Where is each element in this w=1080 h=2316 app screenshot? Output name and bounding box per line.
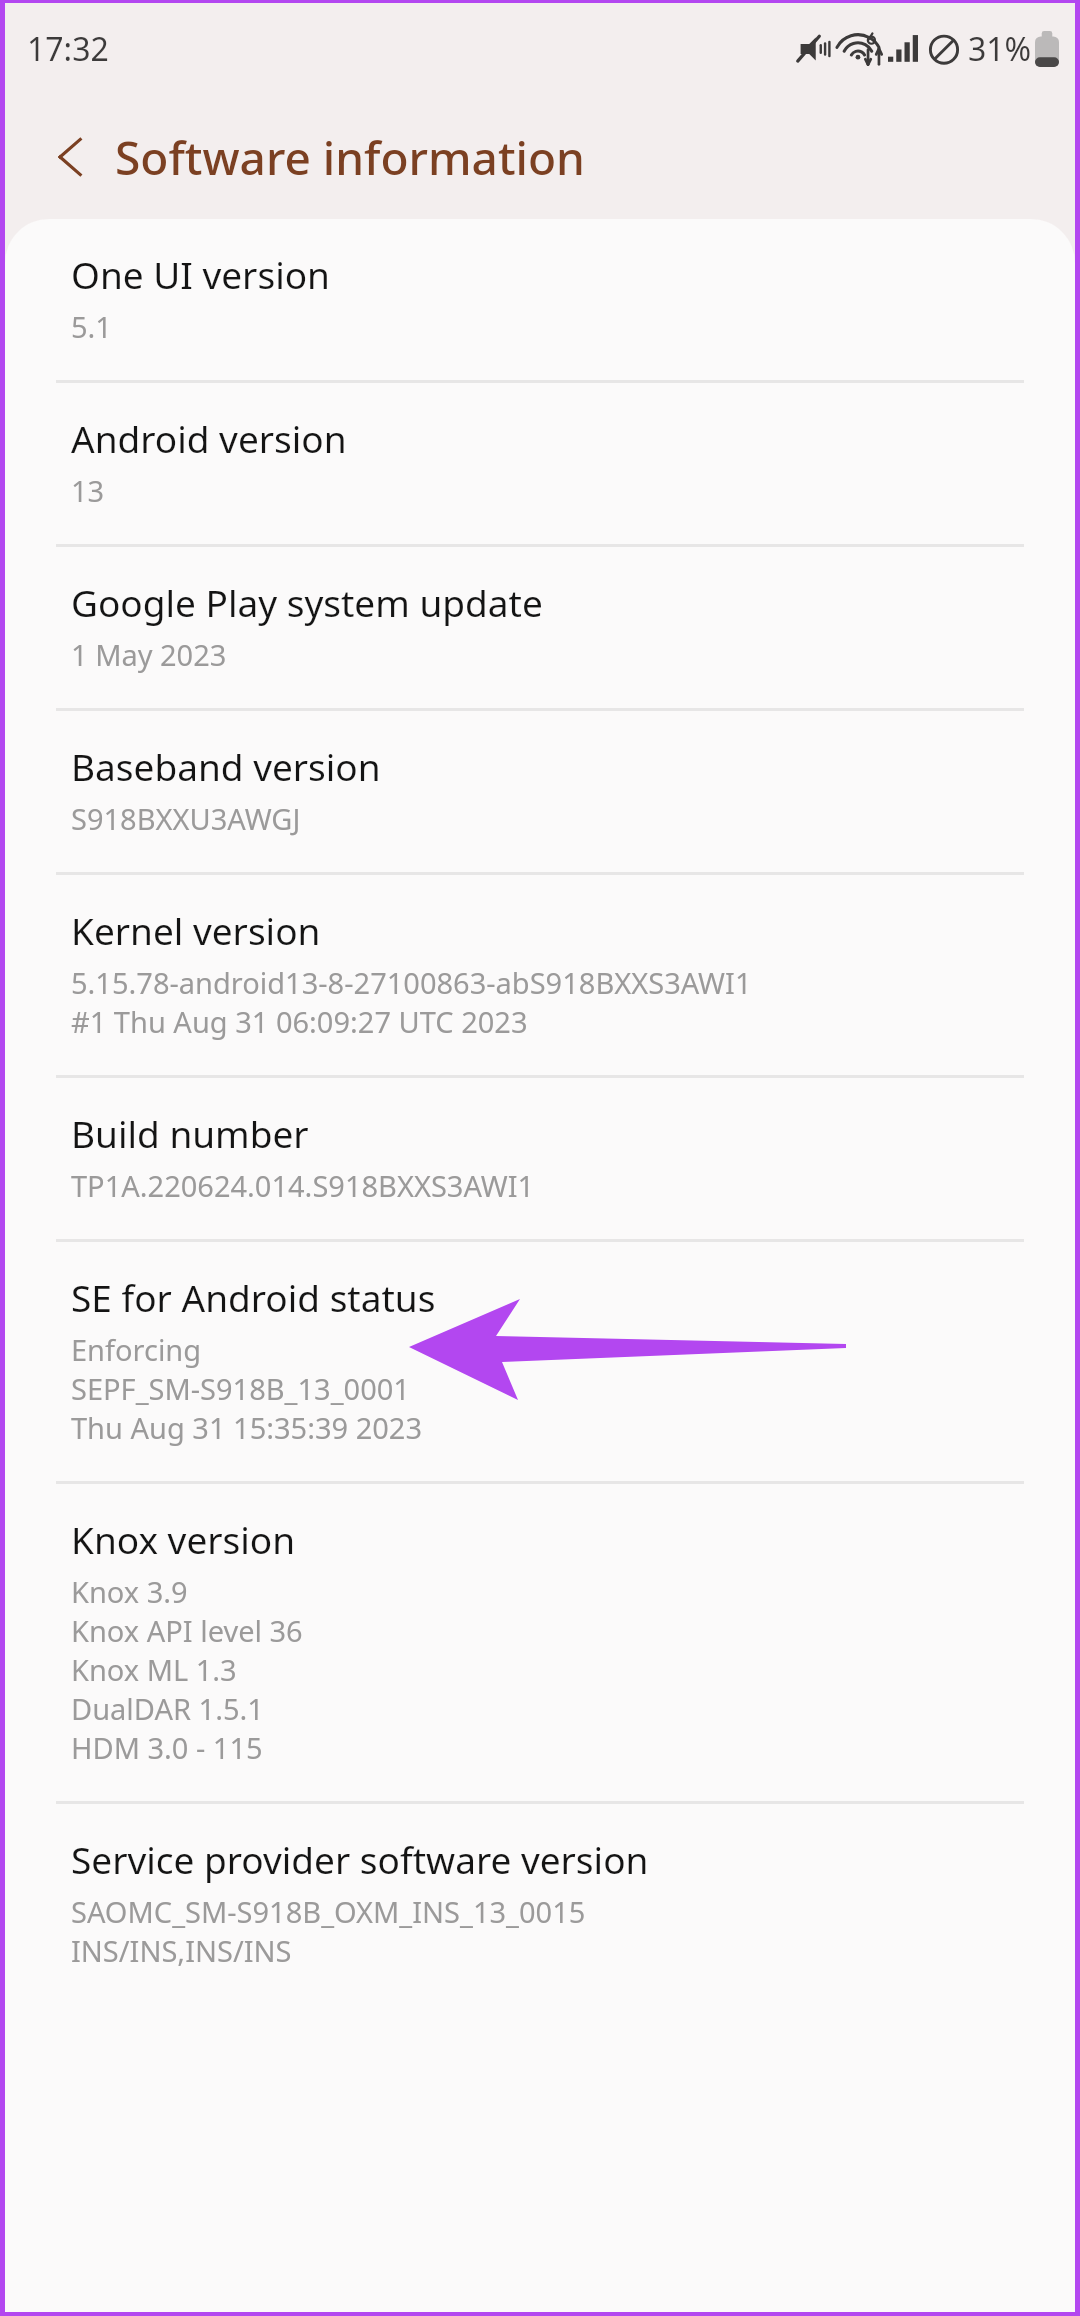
staticText: 5.1	[71, 307, 112, 346]
staticText: Thu Aug 31 15:35:39 2023	[71, 1408, 423, 1447]
staticText: TP1A.220624.014.S918BXXS3AWI1	[71, 1166, 535, 1205]
staticText: Knox API level 36	[71, 1611, 303, 1650]
button[interactable]: Navigate up	[33, 119, 109, 195]
button[interactable]: One UI version	[5, 219, 1075, 380]
button[interactable]: Android version	[5, 383, 1075, 544]
button[interactable]: Knox version	[5, 1484, 1075, 1801]
button[interactable]: Build number	[5, 1078, 1075, 1239]
staticText: One UI version	[71, 249, 330, 299]
button[interactable]: Kernel version	[5, 875, 1075, 1075]
staticText: S918BXXU3AWGJ	[71, 799, 301, 838]
staticText: Baseband version	[71, 741, 381, 791]
staticText: INS/INS,INS/INS	[71, 1931, 292, 1970]
button[interactable]: Service provider software version	[5, 1804, 1075, 2004]
button[interactable]: SE for Android status	[5, 1242, 1075, 1481]
staticText: SAOMC_SM-S918B_OXM_INS_13_0015	[71, 1892, 586, 1931]
staticText: 17:32	[27, 27, 109, 71]
button[interactable]: Google Play system update	[5, 547, 1075, 708]
staticText: Enforcing	[71, 1330, 202, 1369]
staticText: Build number	[71, 1108, 309, 1158]
staticText: Android version	[71, 413, 347, 463]
staticText: SE for Android status	[71, 1272, 436, 1322]
staticText: SEPF_SM-S918B_13_0001	[71, 1369, 410, 1408]
staticText: Software information	[115, 126, 585, 189]
staticText: Knox 3.9	[71, 1572, 188, 1611]
staticText: Knox ML 1.3	[71, 1650, 237, 1689]
staticText: HDM 3.0 - 115	[71, 1728, 263, 1767]
staticText: Knox version	[71, 1514, 296, 1564]
staticText: Kernel version	[71, 905, 321, 955]
staticText: DualDAR 1.5.1	[71, 1689, 264, 1728]
staticText: #1 Thu Aug 31 06:09:27 UTC 2023	[71, 1002, 528, 1041]
staticText: Google Play system update	[71, 577, 543, 627]
button[interactable]: Baseband version	[5, 711, 1075, 872]
staticText: 31%	[968, 27, 1032, 71]
staticText: 5.15.78-android13-8-27100863-abS918BXXS3…	[71, 963, 752, 1002]
staticText: 1 May 2023	[71, 635, 227, 674]
staticText: 13	[71, 471, 105, 510]
staticText: Service provider software version	[71, 1834, 649, 1884]
